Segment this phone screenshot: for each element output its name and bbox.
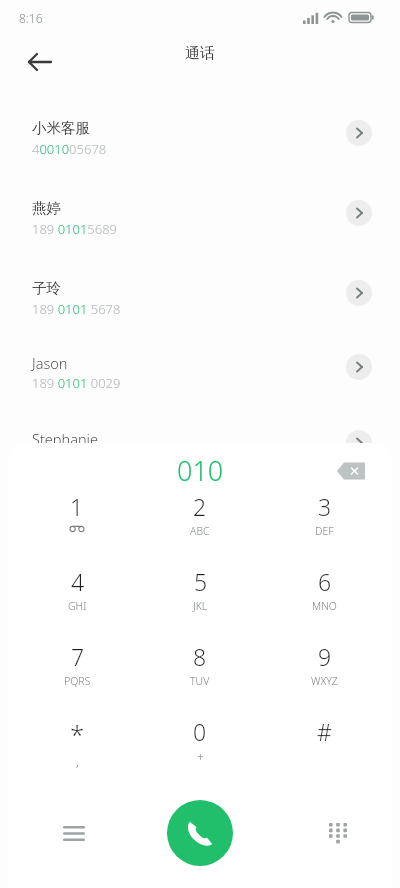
staticText: GHI: [68, 599, 87, 613]
staticText: 2: [193, 491, 207, 522]
button[interactable]: Back: [18, 40, 62, 84]
button[interactable]: 小米客服: [0, 118, 400, 180]
staticText: 4001005678: [32, 140, 107, 158]
staticText: 燕婷: [32, 199, 61, 217]
staticText: JKL: [193, 599, 208, 613]
staticText: *: [70, 716, 85, 751]
staticText: 9: [318, 641, 332, 672]
button[interactable]: 8: [145, 641, 255, 709]
staticText: 5: [194, 566, 208, 597]
staticText: TUV: [190, 674, 210, 688]
staticText: DEF: [315, 524, 334, 538]
staticText: 8:16: [19, 10, 43, 26]
staticText: 189 01015689: [32, 220, 118, 238]
staticText: 4: [71, 566, 85, 597]
button[interactable]: Jason: [0, 352, 400, 414]
staticText: MNO: [312, 599, 337, 613]
staticText: 189 0101 0029: [32, 374, 121, 392]
staticText: 小米客服: [32, 119, 90, 137]
button[interactable]: Menu: [48, 808, 100, 860]
button[interactable]: Call: [167, 800, 233, 866]
staticText: Jason: [32, 353, 68, 373]
button[interactable]: #: [269, 716, 379, 784]
staticText: ,: [76, 753, 79, 769]
staticText: ABC: [190, 524, 210, 538]
staticText: #: [317, 716, 332, 747]
staticText: 3: [318, 491, 332, 522]
staticText: 7: [71, 641, 85, 672]
staticText: PQRS: [64, 674, 91, 688]
staticText: 189 0101 5678: [32, 300, 121, 318]
staticText: Stephanie: [32, 429, 98, 449]
staticText: 子玲: [32, 279, 61, 297]
button[interactable]: 3: [269, 491, 379, 559]
button[interactable]: 子玲: [0, 278, 400, 340]
button[interactable]: 7: [22, 641, 132, 709]
button[interactable]: 5: [145, 566, 255, 634]
staticText: 6: [318, 566, 332, 597]
staticText: 1: [70, 491, 84, 522]
button[interactable]: 6: [269, 566, 379, 634]
staticText: 010: [177, 452, 224, 489]
staticText: WXYZ: [311, 674, 338, 688]
button[interactable]: 9: [269, 641, 379, 709]
button[interactable]: *: [22, 716, 132, 784]
button[interactable]: Stephanie: [0, 428, 400, 490]
button[interactable]: Dialpad: [312, 808, 364, 860]
button[interactable]: 0: [145, 716, 255, 784]
button[interactable]: Backspace: [330, 449, 374, 493]
staticText: 通话: [185, 44, 215, 63]
staticText: 0: [193, 716, 207, 747]
button[interactable]: 燕婷: [0, 198, 400, 260]
button[interactable]: 1: [22, 491, 132, 559]
staticText: 8: [193, 641, 207, 672]
button[interactable]: 2: [145, 491, 255, 559]
staticText: +: [197, 749, 204, 765]
button[interactable]: 4: [22, 566, 132, 634]
